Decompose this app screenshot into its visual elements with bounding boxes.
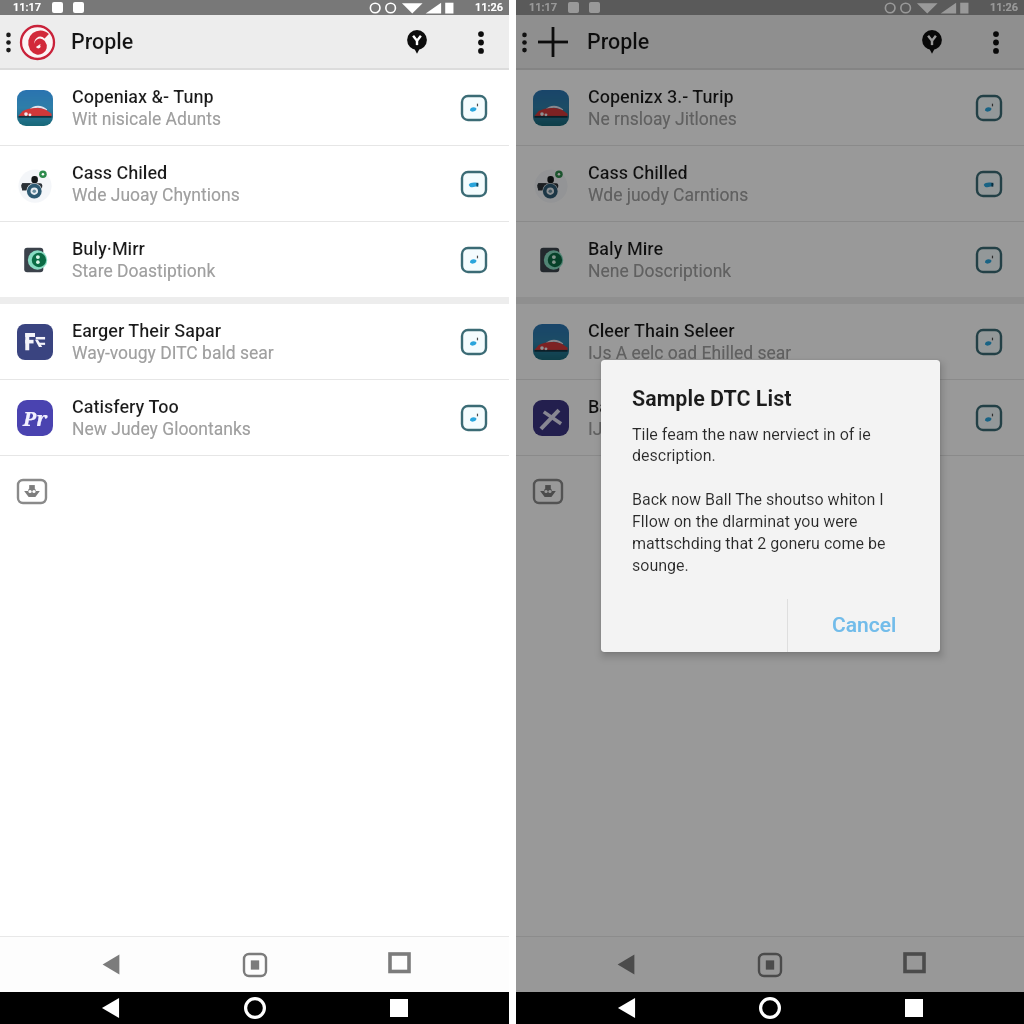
staticText: New Judey Gloontanks: [72, 419, 251, 440]
button[interactable]: Buly·Mirr: [0, 222, 509, 297]
button[interactable]: Earger Their Sapar: [0, 304, 509, 379]
button[interactable]: Open: [456, 324, 492, 360]
button[interactable]: Open: [971, 400, 1007, 436]
staticText: Cass Chiled: [72, 162, 168, 183]
staticText: Cass Chilled: [588, 162, 688, 183]
button[interactable]: App logo: [17, 22, 57, 62]
staticText: Wit nisicale Adunts: [72, 109, 221, 130]
staticText: Ba: [588, 396, 610, 417]
button[interactable]: Recents: [327, 992, 471, 1024]
staticText: Wde Juoay Chyntions: [72, 185, 240, 206]
button[interactable]: Ba: [516, 380, 1024, 455]
staticText: Cleer Thain Seleer: [588, 320, 735, 341]
button[interactable]: Add item: [17, 476, 47, 506]
button[interactable]: Open: [456, 90, 492, 126]
button[interactable]: Cass Chilled: [516, 146, 1024, 221]
button[interactable]: Copenizx 3.- Turip: [516, 70, 1024, 145]
button[interactable]: Menu: [516, 20, 532, 64]
button[interactable]: Location: [908, 18, 956, 66]
staticText: Prople: [71, 29, 134, 54]
staticText: Cancel: [832, 613, 897, 638]
button[interactable]: Open: [456, 242, 492, 278]
button[interactable]: Home: [183, 937, 327, 992]
button[interactable]: Home: [183, 992, 327, 1024]
button[interactable]: Baly Mire: [516, 222, 1024, 297]
button[interactable]: Pr: [0, 380, 509, 455]
button[interactable]: Open: [971, 242, 1007, 278]
button[interactable]: Recents: [842, 937, 986, 992]
staticText: 11:17: [13, 1, 41, 14]
staticText: Copeniax &- Tunp: [72, 86, 214, 107]
button[interactable]: Home: [698, 937, 842, 992]
button[interactable]: Open: [456, 400, 492, 436]
staticText: Baly Mire: [588, 238, 664, 259]
button[interactable]: Location: [393, 18, 441, 66]
staticText: Copenizx 3.- Turip: [588, 86, 734, 107]
staticText: 11:17: [529, 1, 557, 14]
staticText: 11:26: [475, 1, 503, 14]
button[interactable]: Back: [554, 937, 698, 992]
button[interactable]: More options: [972, 18, 1020, 66]
staticText: Sample DTC List: [632, 386, 792, 411]
staticText: IJ: [588, 419, 603, 440]
button[interactable]: Recents: [842, 992, 986, 1024]
button[interactable]: Recents: [327, 937, 471, 992]
button[interactable]: Add item: [533, 476, 563, 506]
staticText: Way-vougy DITC bald sear: [72, 343, 274, 364]
button[interactable]: Open: [971, 166, 1007, 202]
staticText: Nene Doscriptionk: [588, 261, 732, 282]
staticText: Wde juody Carntions: [588, 185, 749, 206]
button[interactable]: Add: [533, 22, 573, 62]
button[interactable]: Cass Chiled: [0, 146, 509, 221]
button[interactable]: Copeniax &- Tunp: [0, 70, 509, 145]
button[interactable]: Cancel: [788, 599, 940, 652]
button[interactable]: Home: [698, 992, 842, 1024]
staticText: Catisfery Too: [72, 396, 179, 417]
staticText: 11:26: [990, 1, 1018, 14]
staticText: IJs A eelc oad Ehilled sear: [588, 343, 792, 364]
button[interactable]: Open: [971, 90, 1007, 126]
button[interactable]: More options: [457, 18, 505, 66]
button[interactable]: Menu: [0, 20, 16, 64]
button[interactable]: Back: [38, 992, 183, 1024]
button[interactable]: Open: [971, 324, 1007, 360]
staticText: Tile feam the naw nerviect in of ie desc…: [632, 425, 886, 575]
staticText: Earger Their Sapar: [72, 320, 222, 341]
staticText: Pr: [23, 405, 48, 432]
button[interactable]: Cleer Thain Seleer: [516, 304, 1024, 379]
button[interactable]: Back: [554, 992, 698, 1024]
staticText: Ne rnsloay Jitlones: [588, 109, 737, 130]
staticText: Stare Doastiptionk: [72, 261, 216, 282]
button[interactable]: Open: [456, 166, 492, 202]
button[interactable]: Back: [38, 937, 183, 992]
staticText: Prople: [587, 29, 650, 54]
staticText: Buly·Mirr: [72, 238, 145, 259]
